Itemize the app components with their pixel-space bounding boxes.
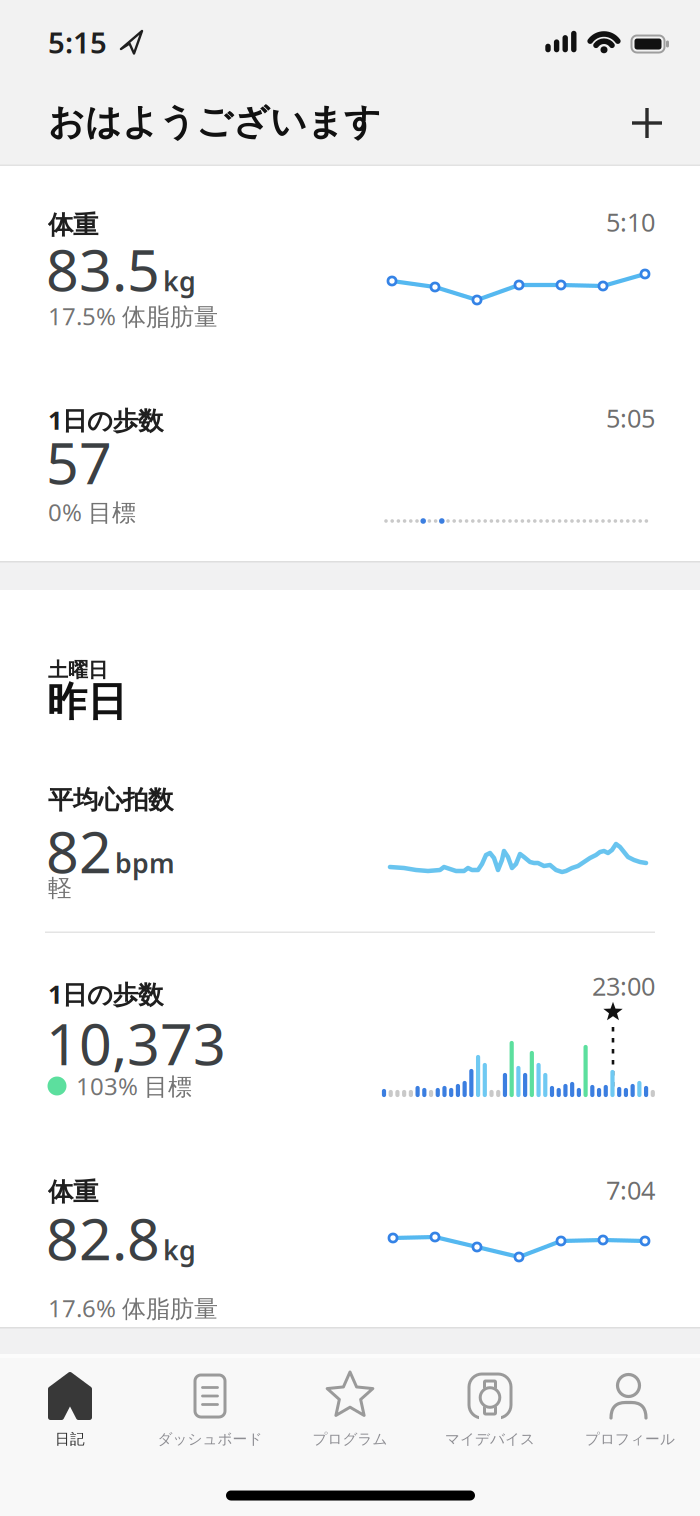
staticText: 軽 (48, 873, 72, 903)
staticText: 体重 (48, 209, 98, 240)
staticText: 体重 (48, 1176, 98, 1207)
staticText: 7:04 (606, 1173, 655, 1207)
staticText: 17.6% 体脂肪量 (48, 1292, 218, 1324)
staticText: bpm (115, 845, 175, 881)
staticText: 83.5 (46, 231, 160, 307)
staticText: 平均心拍数 (48, 784, 173, 815)
staticText: kg (163, 263, 196, 299)
staticText: ダッシュボード (157, 1430, 262, 1448)
staticText: 103% 目標 (76, 1070, 192, 1102)
staticText: 57 (46, 424, 112, 500)
button[interactable]: 1日の歩数 57 0% 目標 (0, 385, 700, 545)
staticText: プロフィール (585, 1430, 675, 1448)
button[interactable]: 1日の歩数 10,373 103% 目標 (0, 955, 700, 1115)
button[interactable]: プログラム (280, 1356, 420, 1461)
staticText: 日記 (55, 1430, 85, 1448)
staticText: 23:00 (592, 969, 655, 1003)
button[interactable]: 日記 (0, 1356, 140, 1461)
button[interactable]: 体重 83.5kg 17.5% 体脂肪量 (0, 186, 700, 350)
button[interactable]: プロフィール (560, 1356, 700, 1461)
staticText: kg (163, 1232, 196, 1268)
staticText: 82 (46, 813, 112, 889)
staticText: 0% 目標 (48, 496, 136, 528)
staticText: 10,373 (46, 1005, 226, 1081)
staticText: 5:05 (606, 401, 655, 435)
staticText: 5:15 (48, 22, 107, 61)
button[interactable]: マイデバイス (420, 1356, 560, 1461)
staticText: 1日の歩数 (48, 403, 163, 437)
staticText: プログラム (312, 1430, 387, 1448)
staticText: 82.8 (46, 1200, 160, 1276)
button[interactable]: 体重 82.8kg 17.6% 体脂肪量 (0, 1160, 700, 1325)
staticText: 17.5% 体脂肪量 (48, 300, 218, 332)
staticText: 土曜日 (48, 658, 108, 682)
button[interactable]: 追加 (625, 101, 669, 145)
staticText: 5:10 (606, 205, 655, 239)
staticText: マイデバイス (445, 1430, 535, 1448)
staticText: 1日の歩数 (48, 977, 163, 1011)
button[interactable]: ダッシュボード (140, 1356, 280, 1461)
staticText: 昨日 (47, 677, 127, 726)
button[interactable]: 平均心拍数 82bpm 軽 (0, 765, 700, 915)
staticText: おはようございます (48, 100, 381, 144)
